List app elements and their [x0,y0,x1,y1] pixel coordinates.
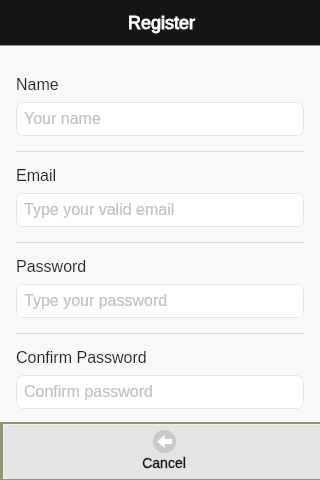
staticText: Type your valid email [24,201,175,219]
button[interactable]: Your name [16,102,304,136]
staticText: Type your password [24,292,168,310]
staticText: Confirm password [24,383,153,401]
other: Cancel [153,430,176,453]
staticText: Confirm Password [16,349,147,367]
staticText: Your name [24,110,101,128]
button[interactable]: Type your password [16,284,304,318]
button[interactable]: Cancel [124,425,204,479]
staticText: Register [128,13,196,33]
staticText: Name [16,76,59,94]
staticText: Password [16,258,87,276]
button[interactable]: Type your valid email [16,193,304,227]
button[interactable]: Confirm password [16,375,304,409]
staticText: Email [16,167,57,185]
staticText: Cancel [142,455,186,471]
